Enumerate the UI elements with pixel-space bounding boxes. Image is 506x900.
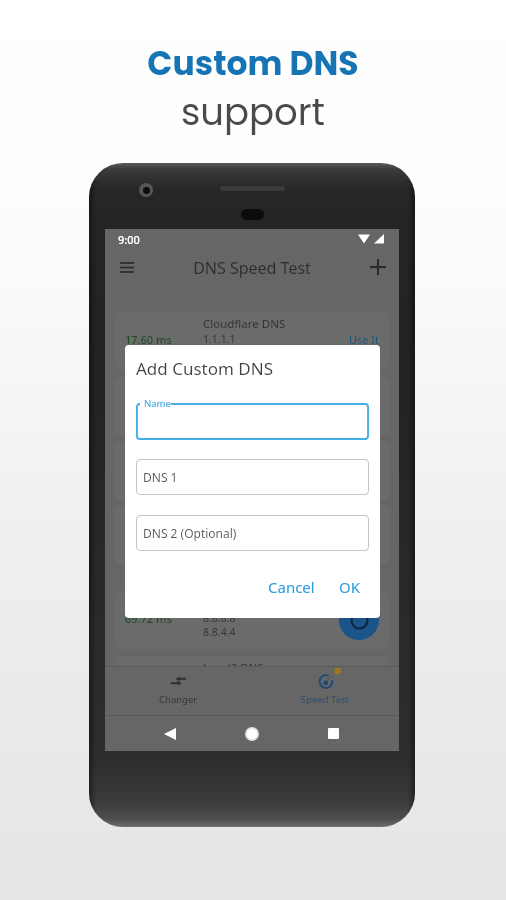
staticText: 9.9.9.9 [203,397,236,411]
button[interactable]: OpenDNS [115,442,389,500]
staticText: OK [339,577,361,597]
staticText: 1.1.1.1 [203,332,236,346]
staticText: Changer [159,693,198,706]
staticText: Custom DNS [147,40,359,86]
staticText: Use It [349,462,380,477]
button[interactable]: Level3 DNS [115,656,389,666]
staticText: Use It [349,611,380,626]
button[interactable]: Quad9 DNS [115,377,389,435]
staticText: Level3 DNS [203,660,264,666]
staticText: 8.8.4.4 [203,625,236,639]
button[interactable]: Google DNS [115,591,389,649]
staticText: Use It [349,332,380,347]
staticText: Speed Test [301,693,350,706]
button[interactable]: AdGuard DNS [115,506,389,564]
button[interactable]: Speed Test [252,666,399,715]
button[interactable]: Add custom DNS [360,249,396,285]
button[interactable]: Cloudflare DNS [115,312,389,370]
staticText: support [181,86,325,138]
staticText: Add Custom DNS [136,357,273,380]
staticText: 17.60 ms [125,332,172,347]
button[interactable]: Back [153,717,186,750]
staticText: 94.140.15.15 [203,540,266,554]
button[interactable]: DNS 2 (Optional) [136,515,369,551]
staticText: DNS 2 (Optional) [143,525,237,541]
button[interactable]: Recent apps [317,717,350,750]
staticText: Cloudflare DNS [203,316,286,332]
button[interactable]: Open navigation menu [109,249,145,285]
staticText: Use It [349,526,380,541]
staticText: DNS Speed Test [105,257,399,279]
staticText: 94.140.14.14 [203,526,266,540]
button[interactable]: Name [136,403,369,440]
staticText: 55.03 ms [125,526,172,541]
staticText: 69.72 ms [125,611,172,626]
staticText: 8.8.8.8 [203,611,236,625]
staticText: Name [144,397,171,410]
staticText: 9:00 [118,232,140,247]
button[interactable]: OK [330,572,370,602]
button[interactable]: Cancel [261,572,321,602]
staticText: DNS 1 [143,469,178,485]
staticText: Cancel [268,577,315,597]
staticText: Use It [349,397,380,412]
button[interactable]: Home [235,717,268,750]
button[interactable]: DNS 1 [136,459,369,495]
staticText: 40.18 ms [125,462,172,477]
staticText: 31.44 ms [125,397,172,412]
staticText: AdGuard DNS [203,510,278,526]
staticText: OpenDNS [203,446,257,462]
button[interactable]: Changer [105,666,252,715]
button[interactable]: Run speed test [339,600,379,640]
